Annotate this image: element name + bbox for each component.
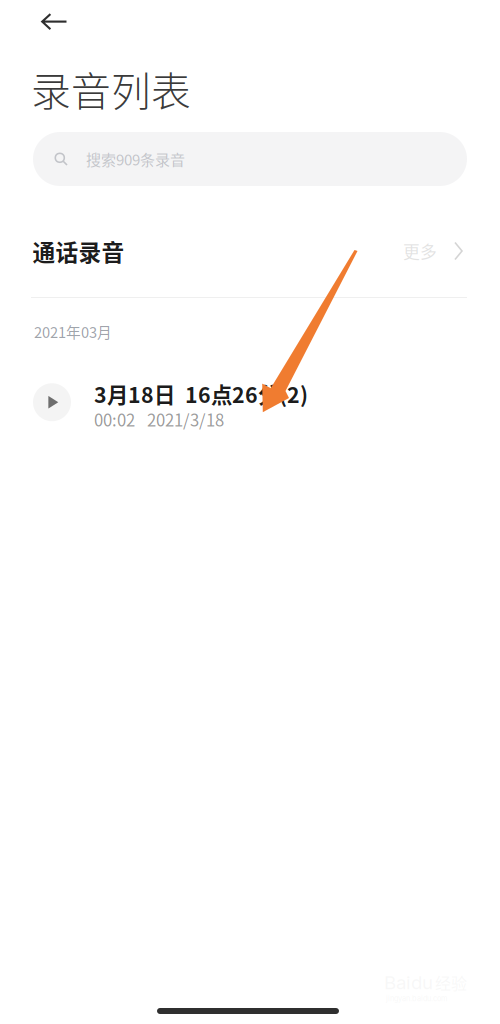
button[interactable]: 3月18日 16点26分(2) bbox=[0, 371, 500, 433]
staticText: 录音列表 bbox=[31, 60, 191, 117]
button[interactable]: 通话录音 bbox=[0, 220, 500, 282]
staticText: 3月18日 16点26分(2) bbox=[94, 378, 308, 409]
staticText: 搜索909条录音 bbox=[86, 148, 185, 170]
staticText: 2021年03月 bbox=[34, 321, 112, 342]
staticText: 更多 bbox=[403, 239, 437, 263]
button[interactable]: 返回 bbox=[28, 2, 80, 42]
button[interactable]: 搜索909条录音 bbox=[33, 132, 467, 186]
staticText: 00:02 2021/3/18 bbox=[94, 407, 224, 431]
staticText: 通话录音 bbox=[32, 235, 124, 267]
